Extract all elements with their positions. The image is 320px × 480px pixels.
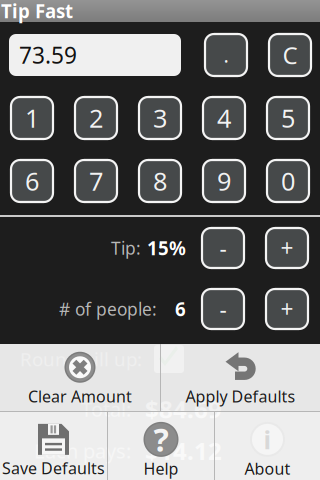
staticText: Clear Amount	[28, 386, 132, 407]
button[interactable]: C	[269, 34, 311, 76]
staticText: 7	[89, 164, 103, 198]
staticText: Tip Fast	[1, 0, 73, 23]
button[interactable]: 6	[11, 160, 53, 202]
staticText: 4	[217, 101, 231, 135]
staticText: Apply Defaults	[185, 386, 295, 407]
staticText: Tip:	[111, 236, 141, 259]
staticText: C	[282, 39, 297, 71]
staticText: 5	[281, 101, 295, 135]
button[interactable]: ?	[108, 412, 214, 480]
button[interactable]: 7	[75, 160, 117, 202]
staticText: 8	[153, 164, 167, 198]
staticText: 6	[25, 164, 39, 198]
staticText: +	[280, 294, 293, 324]
button[interactable]: 8	[139, 160, 181, 202]
button[interactable]: +	[266, 228, 308, 268]
staticText: Round bill up:	[20, 347, 142, 371]
button[interactable]: .	[205, 34, 247, 76]
staticText: +	[280, 233, 293, 263]
button[interactable]: 1	[11, 97, 53, 139]
staticText: 1	[25, 101, 39, 135]
staticText: Help	[143, 458, 178, 479]
staticText: # of people:	[59, 297, 157, 320]
staticText: $14.12	[145, 435, 222, 467]
staticText: 15%	[147, 236, 186, 260]
button[interactable]: 0	[267, 160, 309, 202]
staticText: Total:	[81, 396, 131, 422]
staticText: 6	[175, 297, 186, 321]
staticText: About	[244, 458, 290, 479]
staticText: Each pays:	[34, 437, 131, 464]
staticText: ?	[153, 418, 168, 461]
button[interactable]: Clear Amount	[0, 344, 160, 411]
staticText: 73.59	[19, 40, 77, 70]
button[interactable]: +	[266, 289, 308, 329]
button[interactable]: Save Defaults	[0, 412, 107, 480]
button[interactable]: 4	[203, 97, 245, 139]
staticText: -	[219, 294, 226, 324]
staticText: 9	[217, 164, 231, 198]
button[interactable]: -	[202, 289, 244, 329]
button[interactable]: Apply Defaults	[161, 344, 320, 411]
staticText: 3	[153, 101, 167, 135]
staticText: -	[219, 233, 226, 263]
button[interactable]: i	[215, 412, 320, 480]
button[interactable]: -	[202, 228, 244, 268]
staticText: i	[263, 423, 271, 456]
staticText: 0	[281, 164, 295, 198]
button[interactable]: 3	[139, 97, 181, 139]
staticText: .	[223, 42, 228, 68]
button[interactable]: 2	[75, 97, 117, 139]
button[interactable]: 9	[203, 160, 245, 202]
staticText: 2	[89, 101, 103, 135]
staticText: Save Defaults	[2, 457, 105, 479]
staticText: $84.69	[145, 393, 222, 425]
button[interactable]: 5	[267, 97, 309, 139]
